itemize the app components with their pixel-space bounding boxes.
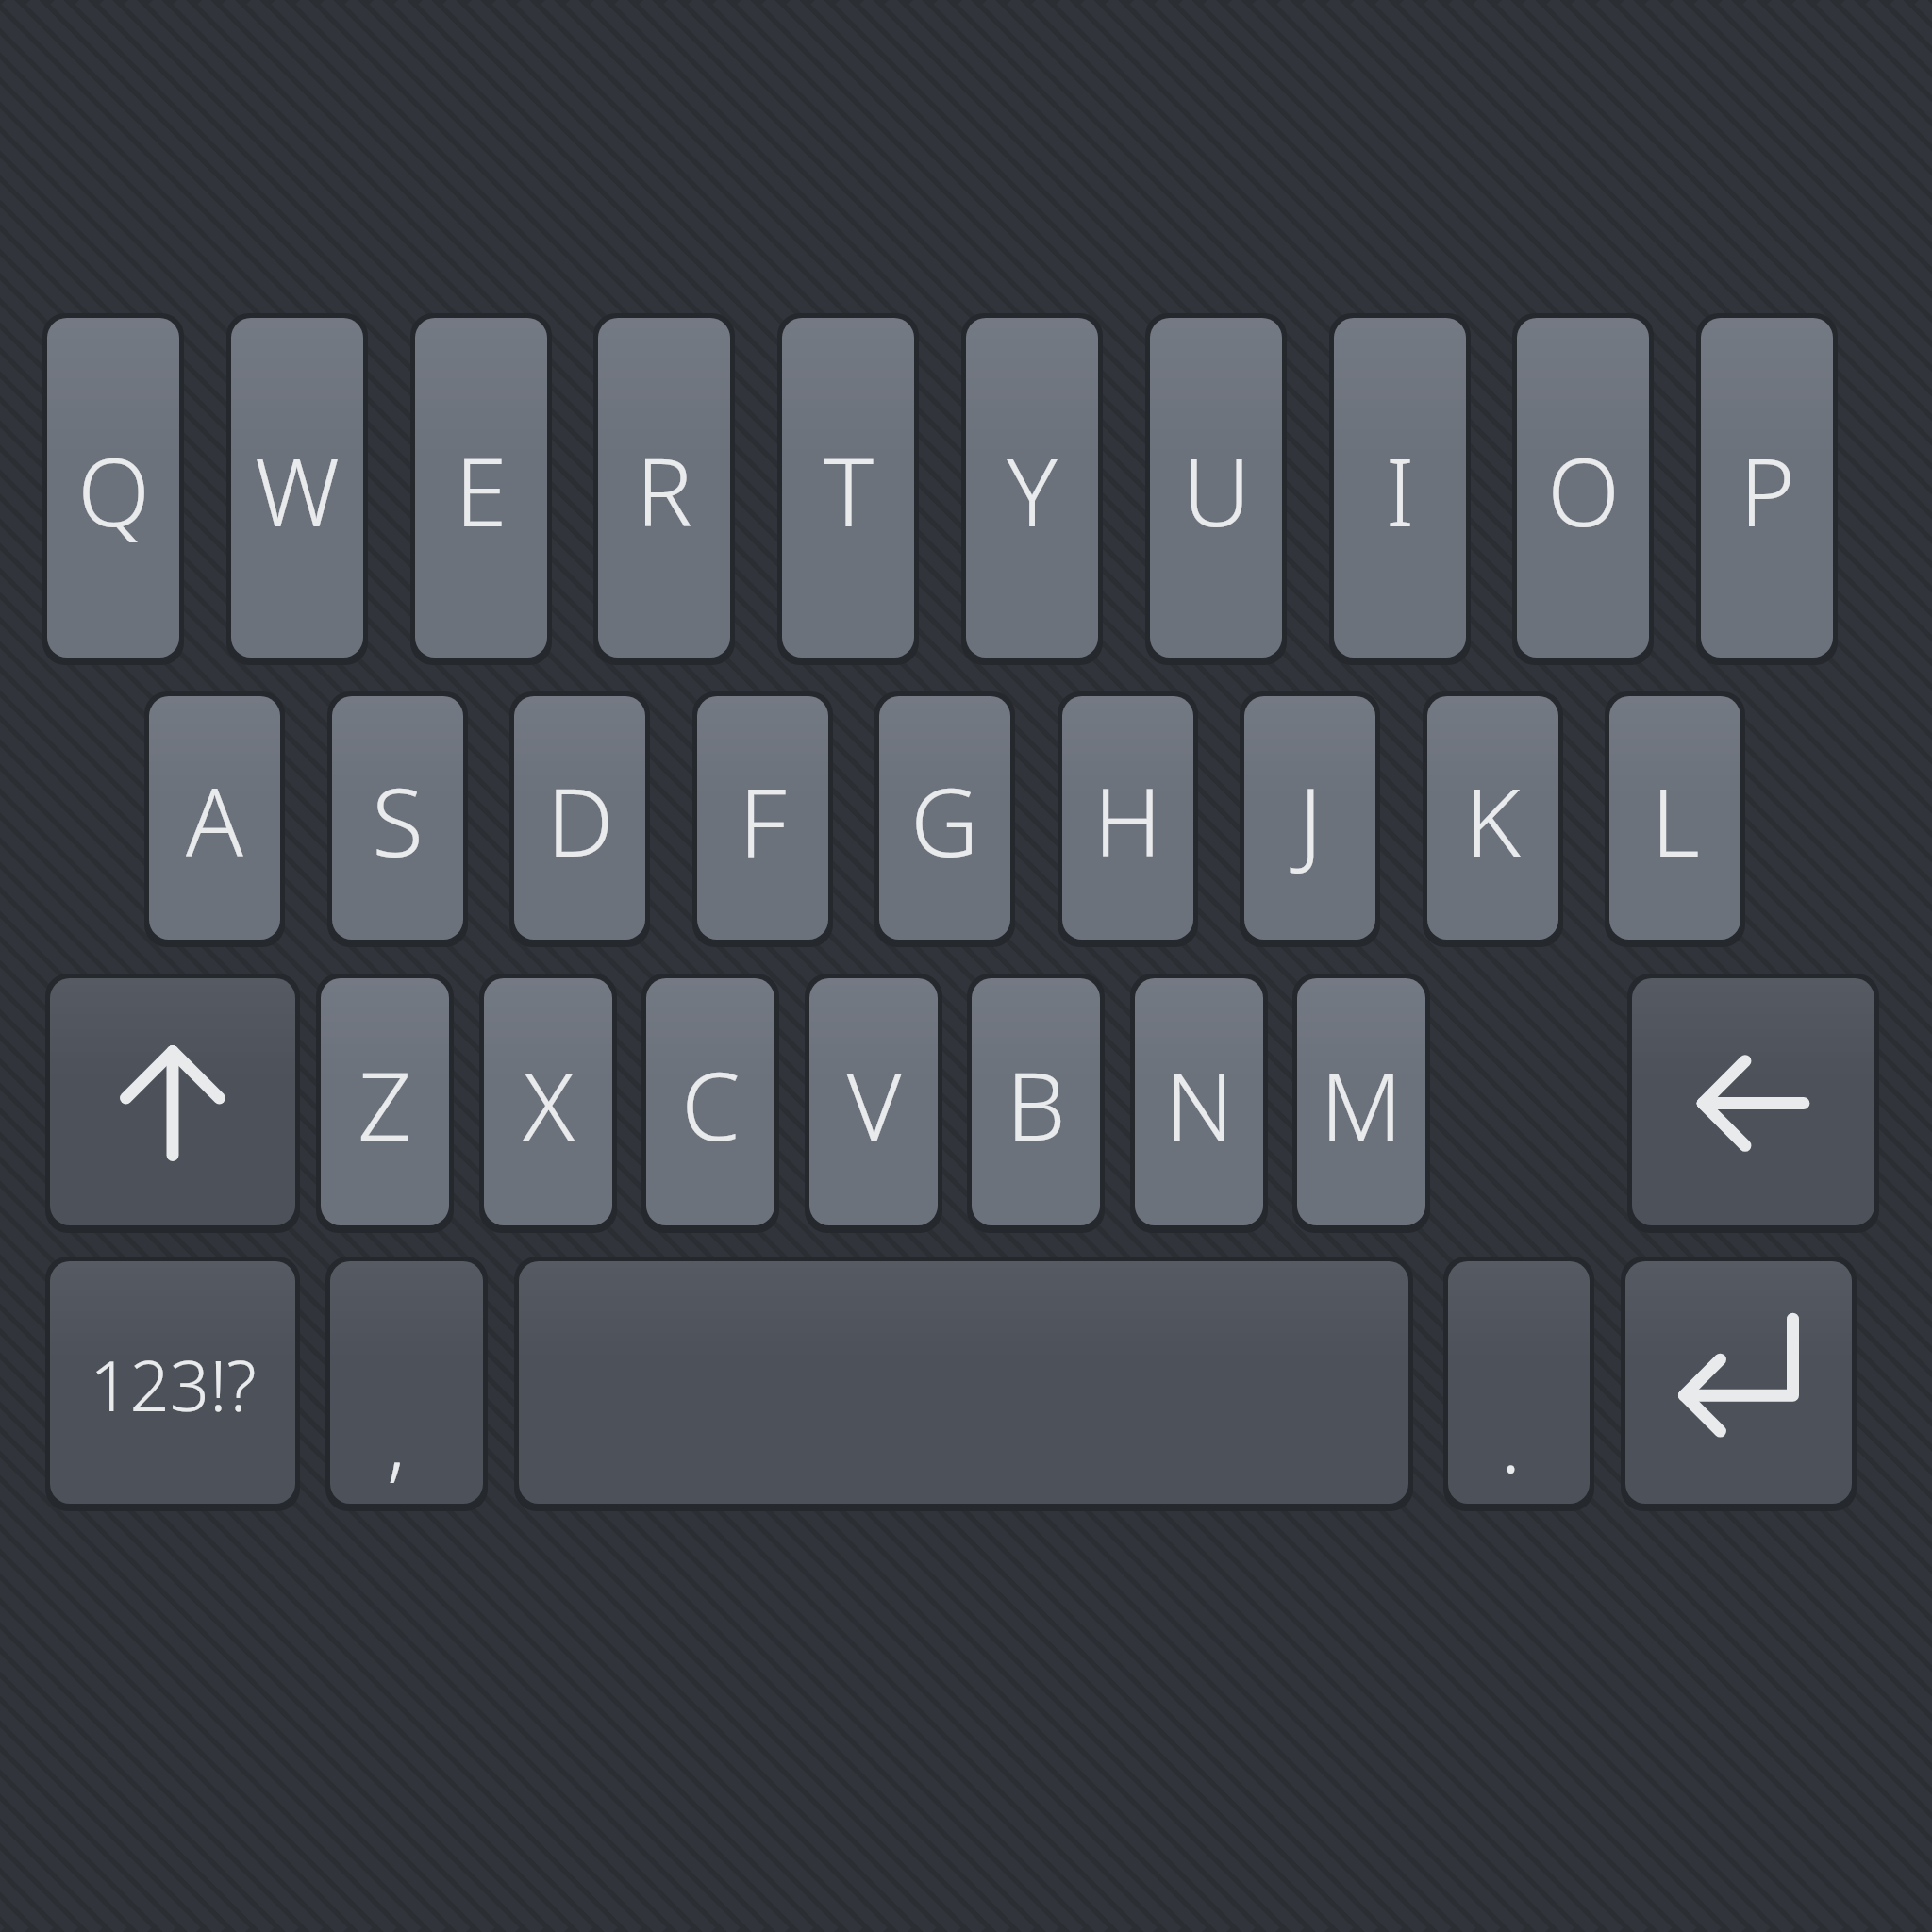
button[interactable]: Q [42,313,184,665]
button[interactable]: H [1058,691,1198,947]
button[interactable]: T [777,313,919,665]
staticText: R [636,425,692,554]
staticText: I [1385,425,1415,554]
staticText: U [1182,425,1251,554]
button[interactable]: Space [514,1257,1413,1511]
staticText: A [186,756,243,884]
staticText: 123!? [90,1337,257,1432]
button[interactable]: J [1240,691,1380,947]
button[interactable]: S [327,691,468,947]
staticText: P [1740,425,1795,554]
staticText: Q [77,425,150,554]
staticText: J [1298,756,1323,884]
button[interactable]: D [509,691,650,947]
button[interactable]: E [410,313,552,665]
button[interactable]: M [1292,974,1430,1233]
staticText: S [372,756,424,884]
button[interactable]: 123!? [45,1257,300,1511]
staticText: O [1547,425,1620,554]
button[interactable]: Shift [45,974,300,1233]
button[interactable]: G [874,691,1015,947]
staticText: B [1006,1040,1066,1168]
staticText: D [546,756,614,884]
staticText: L [1651,756,1700,884]
button[interactable]: I [1329,313,1471,665]
staticText: . [1501,1386,1521,1496]
button[interactable]: Z [316,974,454,1233]
button[interactable]: Y [961,313,1103,665]
button[interactable]: N [1130,974,1268,1233]
staticText: V [846,1040,902,1168]
button[interactable]: X [479,974,617,1233]
button[interactable]: O [1512,313,1654,665]
staticText: T [824,425,874,554]
button[interactable]: Enter [1621,1257,1857,1511]
staticText: F [739,756,787,884]
button[interactable]: P [1696,313,1838,665]
button[interactable]: L [1605,691,1745,947]
staticText: E [455,425,508,554]
staticText: N [1165,1040,1234,1168]
staticText: H [1093,756,1162,884]
staticText: C [681,1040,741,1168]
button[interactable]: V [805,974,942,1233]
button[interactable]: C [641,974,779,1233]
button[interactable]: A [144,691,285,947]
button[interactable]: R [593,313,735,665]
staticText: K [1465,756,1521,884]
button[interactable]: K [1423,691,1563,947]
button[interactable]: U [1145,313,1287,665]
staticText: Z [358,1040,412,1168]
staticText: X [523,1040,575,1168]
staticText: G [910,756,979,884]
button[interactable]: . [1443,1257,1594,1511]
button[interactable]: B [967,974,1105,1233]
staticText: M [1320,1040,1403,1168]
staticText: Y [1007,425,1058,554]
button[interactable]: , [325,1257,488,1511]
button[interactable]: F [692,691,833,947]
button[interactable]: Backspace [1627,974,1879,1233]
button[interactable]: W [226,313,368,665]
staticText: W [255,425,340,554]
staticText: , [387,1386,406,1496]
